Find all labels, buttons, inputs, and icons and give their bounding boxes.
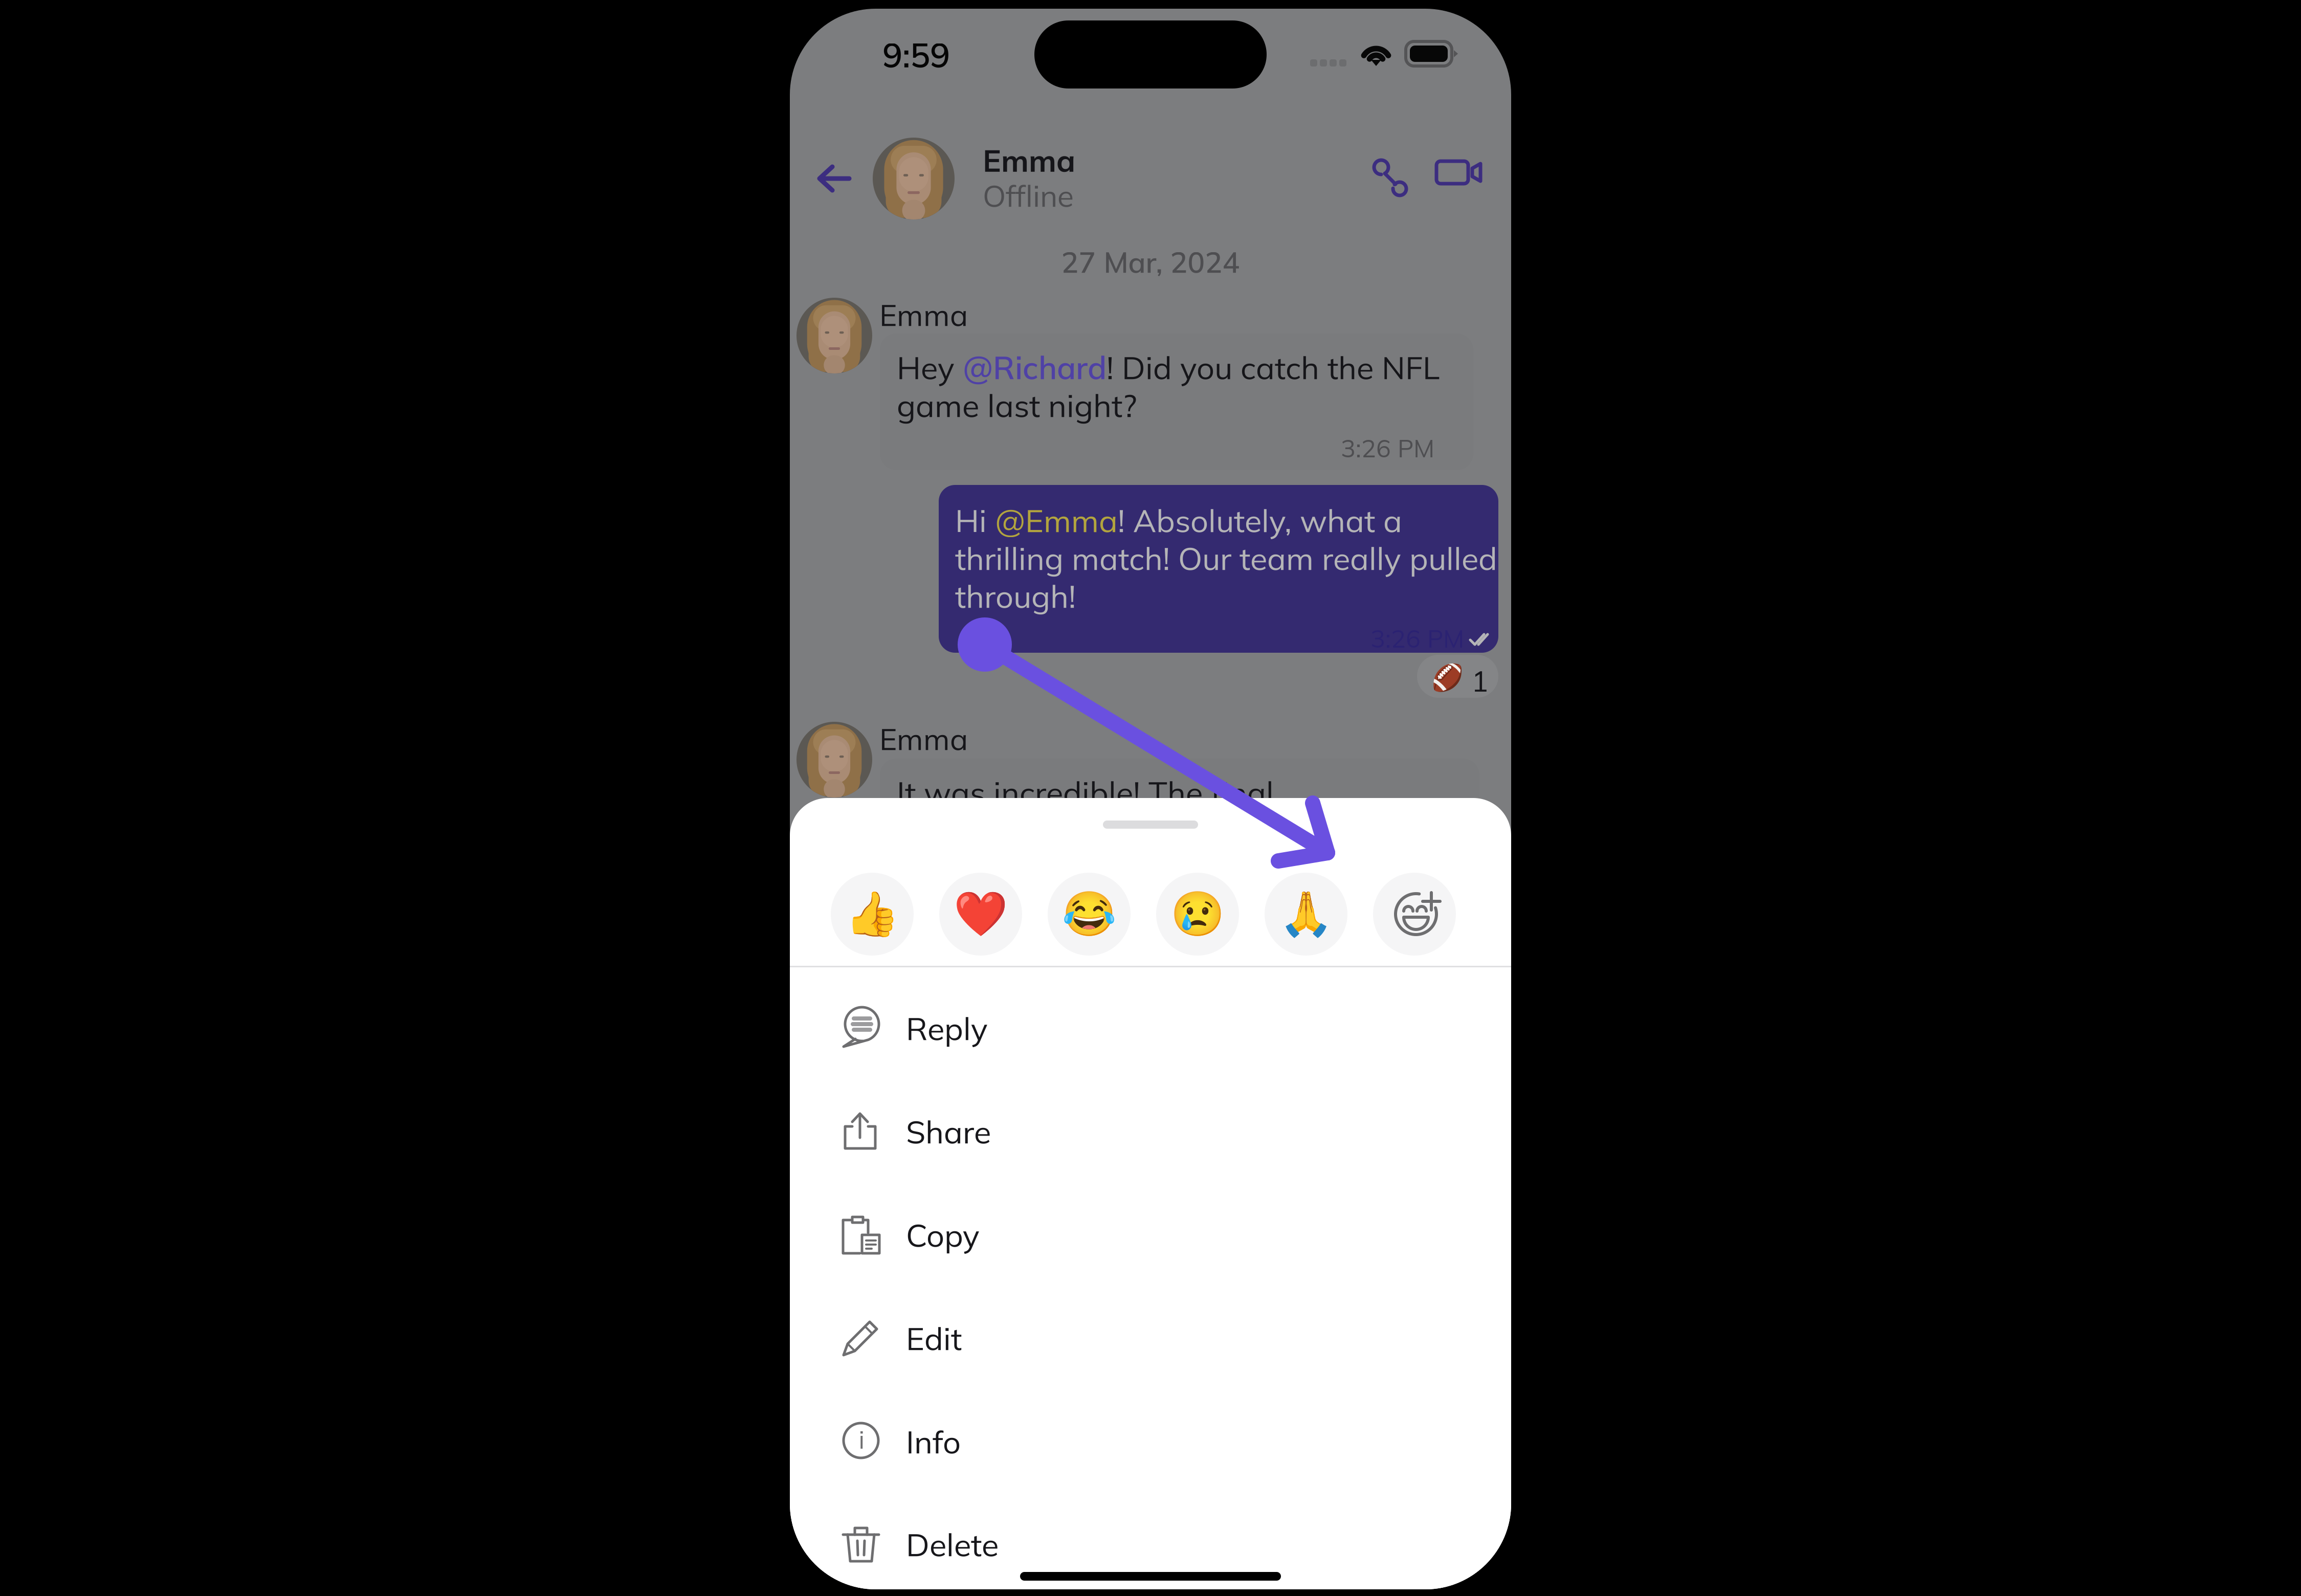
staticText: 3:26 PM (1370, 623, 1464, 654)
button[interactable]: Back (790, 9, 827, 40)
staticText: Hey (897, 348, 963, 387)
staticText: Delete (906, 1525, 999, 1564)
staticText: 🙏 (1279, 889, 1333, 940)
button[interactable]: 😂 (790, 798, 873, 881)
button[interactable]: Video call (790, 9, 837, 40)
staticText: 27 Mar, 2024 (1061, 244, 1240, 280)
staticText: 👍 (845, 889, 899, 940)
button[interactable]: Voice call (790, 9, 831, 50)
staticText: @Richard (963, 348, 1107, 387)
staticText: Edit (906, 1318, 962, 1358)
staticText: i (859, 1424, 864, 1455)
button[interactable]: 😢 (790, 798, 873, 881)
staticText: @Emma (995, 501, 1118, 540)
staticText: Copy (906, 1215, 980, 1255)
button[interactable]: Share (790, 798, 1511, 901)
button[interactable]: Copy (790, 798, 1511, 901)
staticText: Emma (983, 141, 1075, 179)
staticText: ! Did you catch the NFL (1107, 348, 1440, 387)
staticText: It was incredible! The final (897, 773, 1274, 812)
staticText: Share (906, 1112, 991, 1151)
button[interactable]: Add reaction (790, 798, 873, 881)
staticText: 1 (1471, 663, 1489, 699)
staticText: ! Absolutely, what a (1118, 501, 1402, 540)
staticText: Info (906, 1422, 961, 1461)
staticText: 😢 (1170, 889, 1225, 940)
staticText: through! (955, 576, 1076, 616)
staticText: 3:26 PM (1341, 433, 1434, 464)
staticText: 9:59 (882, 34, 950, 76)
button[interactable]: Delete (790, 798, 1511, 901)
button[interactable]: i (790, 798, 1511, 901)
button[interactable]: 🙏 (790, 798, 873, 881)
staticText: thrilling match! Our team really pulled (955, 538, 1497, 578)
staticText: Emma (879, 296, 968, 333)
staticText: game last night? (897, 385, 1137, 425)
staticText: 🏈 (1431, 662, 1464, 693)
button[interactable]: ❤️ (790, 798, 873, 881)
staticText: 😂 (1062, 889, 1116, 940)
button[interactable]: Edit (790, 798, 1511, 901)
button[interactable]: 👍 (790, 798, 873, 881)
staticText: Reply (906, 1008, 988, 1048)
staticText: Offline (983, 177, 1074, 214)
staticText: ❤️ (954, 889, 1008, 940)
button[interactable]: Reply (790, 798, 1511, 901)
staticText: Emma (879, 720, 968, 757)
staticText: Hi (955, 501, 995, 540)
